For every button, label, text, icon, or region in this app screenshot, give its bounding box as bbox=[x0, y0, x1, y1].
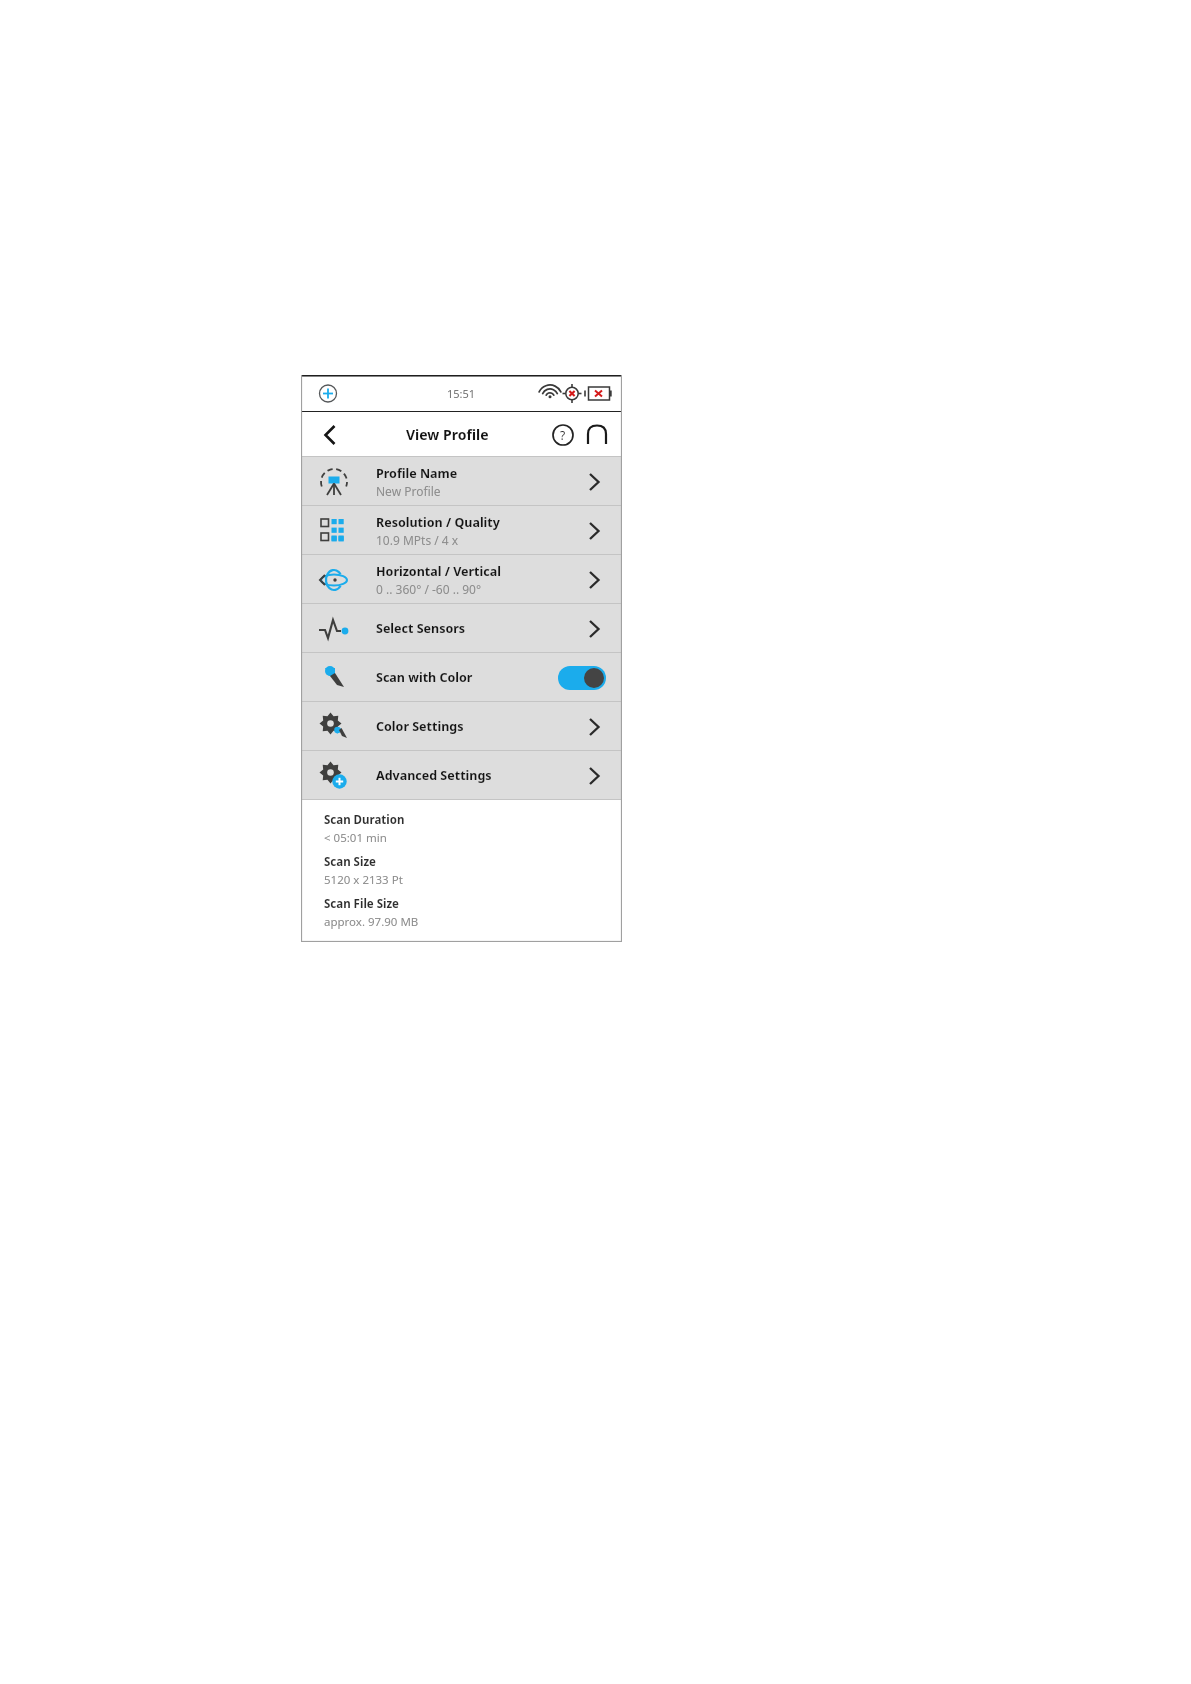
staticText: Scan Size bbox=[324, 854, 376, 870]
button[interactable]: Horizontal / Vertical bbox=[301, 555, 622, 604]
button[interactable]: Help bbox=[548, 420, 578, 450]
button[interactable]: Color Settings bbox=[301, 702, 622, 751]
staticText: Scan File Size bbox=[324, 896, 399, 912]
staticText: Advanced Settings bbox=[376, 767, 492, 784]
staticText: Select Sensors bbox=[376, 620, 466, 637]
staticText: View Profile bbox=[406, 425, 489, 444]
staticText: approx. 97.90 MB bbox=[324, 914, 419, 930]
button[interactable]: Scan with Color toggle bbox=[558, 666, 606, 690]
staticText: Scan with Color bbox=[376, 669, 473, 686]
button[interactable]: Scan with Color bbox=[301, 653, 622, 702]
button[interactable]: Select Sensors bbox=[301, 604, 622, 653]
button[interactable]: Resolution / Quality bbox=[301, 506, 622, 555]
button[interactable]: Back bbox=[313, 418, 347, 452]
staticText: Resolution / Quality bbox=[376, 514, 500, 531]
button[interactable]: Home bbox=[582, 420, 612, 450]
staticText: Color Settings bbox=[376, 718, 464, 735]
staticText: New Profile bbox=[376, 483, 441, 499]
staticText: 0 .. 360° / -60 .. 90° bbox=[376, 581, 482, 597]
staticText: < 05:01 min bbox=[324, 830, 387, 846]
staticText: Scan Duration bbox=[324, 812, 405, 828]
staticText: Horizontal / Vertical bbox=[376, 563, 501, 580]
staticText: 15:51 bbox=[447, 386, 476, 401]
staticText: 10.9 MPts / 4 x bbox=[376, 532, 459, 548]
staticText: Profile Name bbox=[376, 465, 458, 482]
staticText: 5120 x 2133 Pt bbox=[324, 872, 403, 888]
button[interactable]: Profile Name bbox=[301, 457, 622, 506]
staticText: ? bbox=[560, 427, 566, 443]
button[interactable]: Advanced Settings bbox=[301, 751, 622, 800]
